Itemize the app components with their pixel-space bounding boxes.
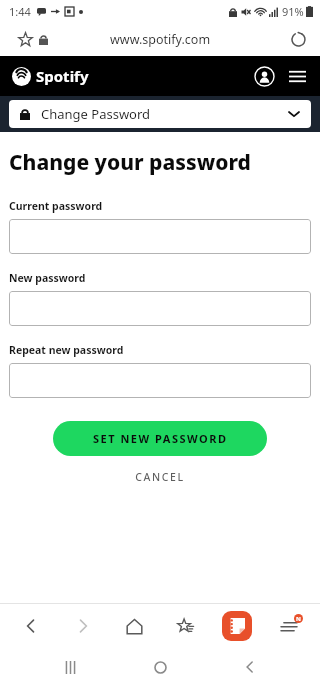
staticText: CANCEL — [135, 470, 185, 484]
button[interactable]: Back — [230, 648, 270, 686]
button[interactable]: Change Password — [9, 100, 311, 128]
button[interactable]: Back — [11, 606, 51, 646]
button[interactable]: Reload — [284, 25, 312, 53]
staticText: Change Password — [41, 105, 151, 123]
button[interactable]: Menu — [284, 63, 310, 89]
staticText: Change your password — [9, 148, 251, 177]
staticText: N — [296, 615, 301, 623]
staticText: www.spotify.com — [110, 31, 211, 48]
staticText: Current password — [9, 199, 103, 213]
button[interactable] — [9, 219, 311, 254]
button[interactable]: CANCEL — [117, 465, 203, 489]
button[interactable]: Forward — [63, 606, 103, 646]
button[interactable] — [9, 363, 311, 398]
button[interactable]: Bookmark — [13, 27, 37, 51]
staticText: SET NEW PASSWORD — [93, 431, 228, 446]
button[interactable]: Recent apps — [50, 648, 90, 686]
staticText: New password — [9, 271, 86, 285]
staticText: 91% — [282, 4, 304, 19]
button[interactable]: SET NEW PASSWORD — [53, 421, 267, 456]
staticText: Repeat new password — [9, 343, 124, 357]
button[interactable]: Bookmarks — [166, 606, 206, 646]
button[interactable]: Spotify — [12, 66, 89, 86]
button[interactable]: Tabs and options — [269, 606, 309, 646]
button[interactable] — [9, 291, 311, 326]
button[interactable]: Notes app — [217, 606, 257, 646]
button[interactable]: Account — [250, 62, 278, 90]
button[interactable]: Home — [140, 648, 180, 686]
staticText: Spotify — [36, 66, 89, 86]
staticText: 1:44 — [9, 4, 31, 19]
button[interactable]: Home — [114, 606, 154, 646]
